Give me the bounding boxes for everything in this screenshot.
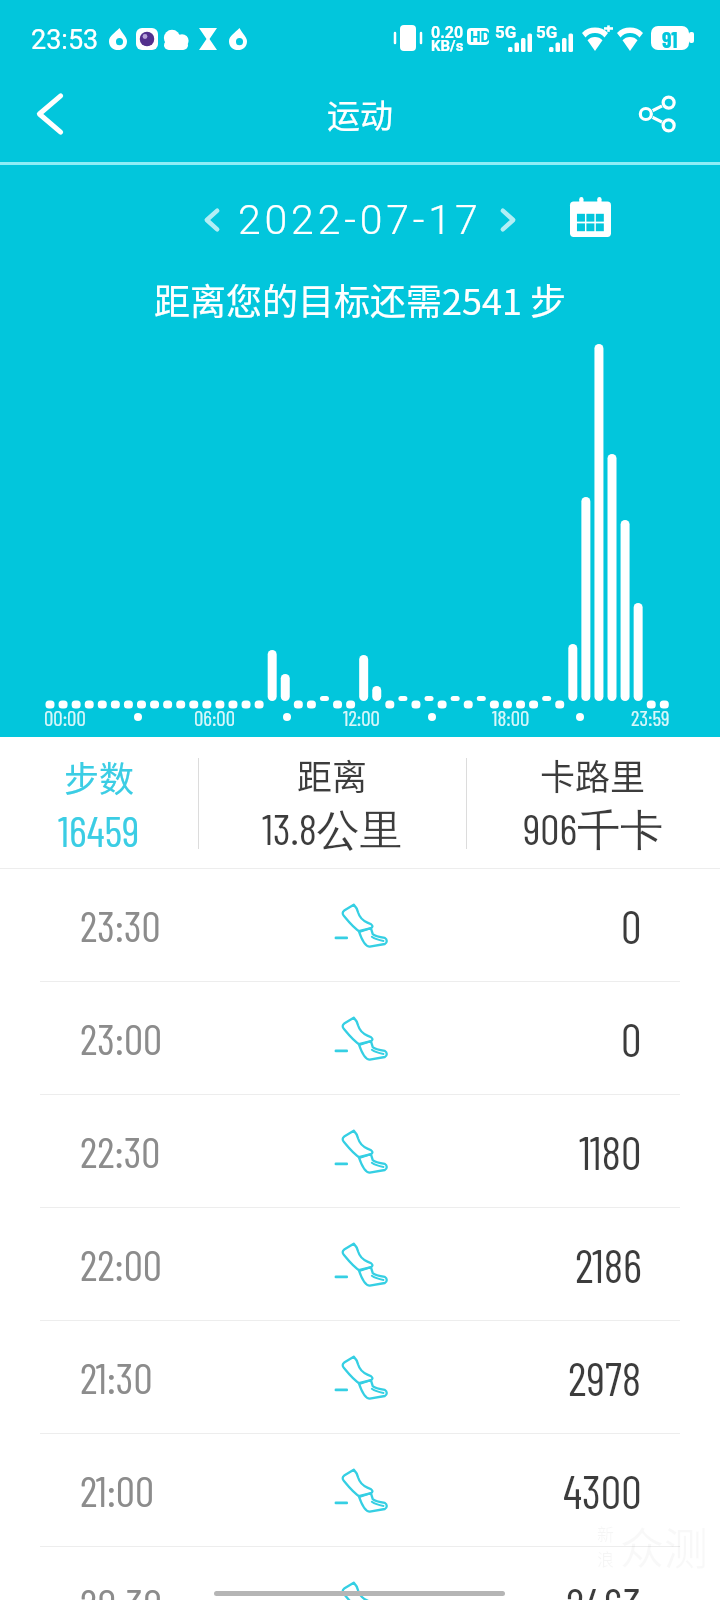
staticText: 23:30	[80, 899, 161, 951]
staticText: 12:00	[343, 705, 380, 730]
staticText: 5G	[536, 22, 558, 42]
staticText: 距离您的目标还需2541 步	[154, 273, 566, 325]
staticText: 浪	[597, 1546, 614, 1571]
staticText: 2186	[575, 1237, 642, 1292]
staticText: 卡路里	[540, 749, 646, 800]
staticText: 运动	[327, 90, 393, 138]
staticText: 5G	[495, 22, 517, 42]
button[interactable]: 卡路里	[466, 737, 720, 869]
staticText: 22:00	[80, 1238, 162, 1290]
staticText: 906千卡	[523, 802, 664, 858]
staticText: 18:00	[492, 705, 530, 730]
button[interactable]: 23:30	[0, 869, 720, 981]
staticText: 21:00	[80, 1464, 155, 1516]
button[interactable]: 步数	[0, 737, 198, 869]
button[interactable]: Pick date	[562, 189, 618, 245]
staticText: 0.20	[431, 23, 464, 42]
staticText: 00:00	[44, 705, 86, 730]
staticText: 1180	[579, 1124, 642, 1179]
button[interactable]: Previous day	[186, 194, 238, 246]
staticText: 20:30	[80, 1577, 163, 1600]
staticText: 16459	[58, 804, 140, 856]
staticText: 2978	[568, 1350, 642, 1405]
staticText: 4300	[563, 1463, 642, 1518]
button[interactable]: Back	[0, 69, 100, 159]
staticText: 0	[621, 898, 642, 953]
staticText: HD	[470, 28, 491, 46]
staticText: 2022-07-17	[238, 196, 482, 244]
button[interactable]: Share	[596, 69, 720, 159]
button[interactable]: 22:30	[0, 1095, 720, 1207]
staticText: 23:00	[80, 1012, 163, 1064]
button[interactable]: 23:00	[0, 982, 720, 1094]
staticText: 22:30	[80, 1125, 161, 1177]
staticText: KB/s	[431, 37, 464, 55]
staticText: 步数	[64, 751, 135, 802]
button[interactable]: 距离	[198, 737, 466, 869]
staticText: 21:30	[80, 1351, 153, 1403]
staticText: 13.8公里	[262, 802, 403, 858]
staticText: 距离	[297, 749, 368, 800]
staticText: 06:00	[194, 705, 236, 730]
button[interactable]: Next day	[482, 194, 534, 246]
staticText: 91	[662, 26, 678, 50]
button[interactable]: 21:00	[0, 1434, 720, 1546]
button[interactable]: 21:30	[0, 1321, 720, 1433]
staticText: 23:53	[31, 24, 99, 56]
button[interactable]: 20:30	[0, 1547, 720, 1600]
button[interactable]: 22:00	[0, 1208, 720, 1320]
staticText: 0	[621, 1011, 642, 1066]
staticText: 23:59	[631, 705, 670, 730]
staticText: 2463	[566, 1576, 642, 1600]
